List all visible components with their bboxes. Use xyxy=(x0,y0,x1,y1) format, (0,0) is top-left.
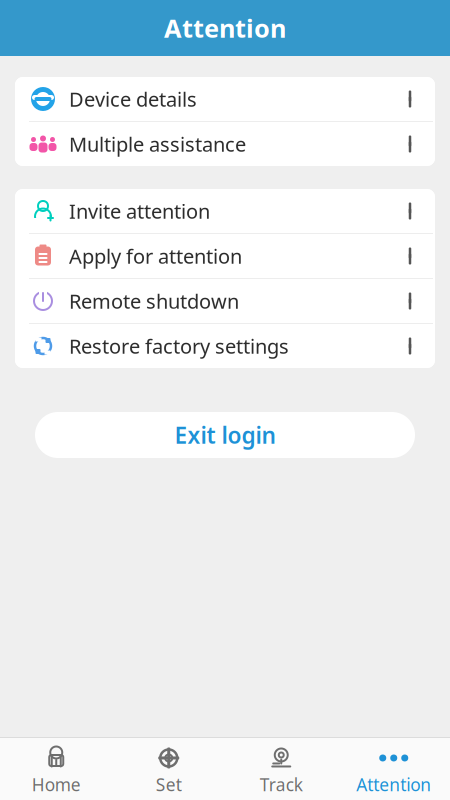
staticText: Exit login xyxy=(174,420,275,450)
staticText: Set xyxy=(156,773,182,796)
staticText: Attention xyxy=(356,773,431,796)
button[interactable]: Restore factory settings xyxy=(15,324,435,368)
staticText: Restore factory settings xyxy=(69,333,289,359)
button[interactable]: Home xyxy=(0,738,112,800)
button[interactable]: Remote shutdown xyxy=(15,279,435,324)
staticText: Invite attention xyxy=(69,198,210,224)
staticText: Remote shutdown xyxy=(69,288,239,314)
staticText: Track xyxy=(260,773,303,796)
staticText: Home xyxy=(32,773,81,796)
staticText: Apply for attention xyxy=(69,243,242,269)
button[interactable]: Invite attention xyxy=(15,189,435,234)
staticText: Device details xyxy=(69,86,197,112)
button[interactable]: Device details xyxy=(15,77,435,122)
staticText: Attention xyxy=(164,11,286,45)
button[interactable]: Attention xyxy=(337,738,450,800)
staticText: Multiple assistance xyxy=(69,131,246,157)
button[interactable]: Apply for attention xyxy=(15,234,435,279)
button[interactable]: Set xyxy=(112,738,225,800)
button[interactable]: Exit login xyxy=(35,412,415,458)
button[interactable]: Multiple assistance xyxy=(15,122,435,166)
button[interactable]: Track xyxy=(225,738,337,800)
